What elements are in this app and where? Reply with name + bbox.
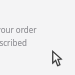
staticText: e your order: [0, 24, 37, 35]
other: Pointer: [52, 51, 66, 67]
staticText: described: [0, 37, 27, 48]
button[interactable]: e your order: [0, 24, 65, 48]
